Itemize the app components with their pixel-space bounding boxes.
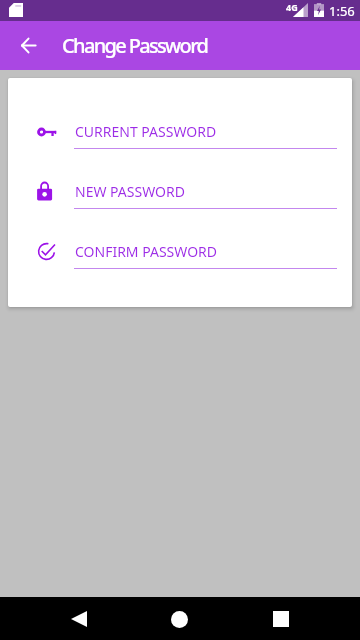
button[interactable]: Home — [159, 599, 199, 639]
button[interactable]: Recent apps — [261, 599, 301, 639]
button[interactable]: CONFIRM PASSWORD — [8, 198, 352, 258]
staticText: 1:56 — [329, 2, 355, 20]
button[interactable]: Back — [59, 599, 99, 639]
staticText: Change Password — [62, 32, 208, 59]
staticText: NEW PASSWORD — [75, 182, 185, 201]
button[interactable]: CURRENT PASSWORD — [8, 78, 352, 138]
button[interactable]: NEW PASSWORD — [8, 138, 352, 198]
staticText: CURRENT PASSWORD — [75, 122, 217, 141]
staticText: 4G — [286, 1, 298, 13]
staticText: CONFIRM PASSWORD — [75, 242, 218, 261]
button[interactable]: Back — [10, 28, 46, 64]
